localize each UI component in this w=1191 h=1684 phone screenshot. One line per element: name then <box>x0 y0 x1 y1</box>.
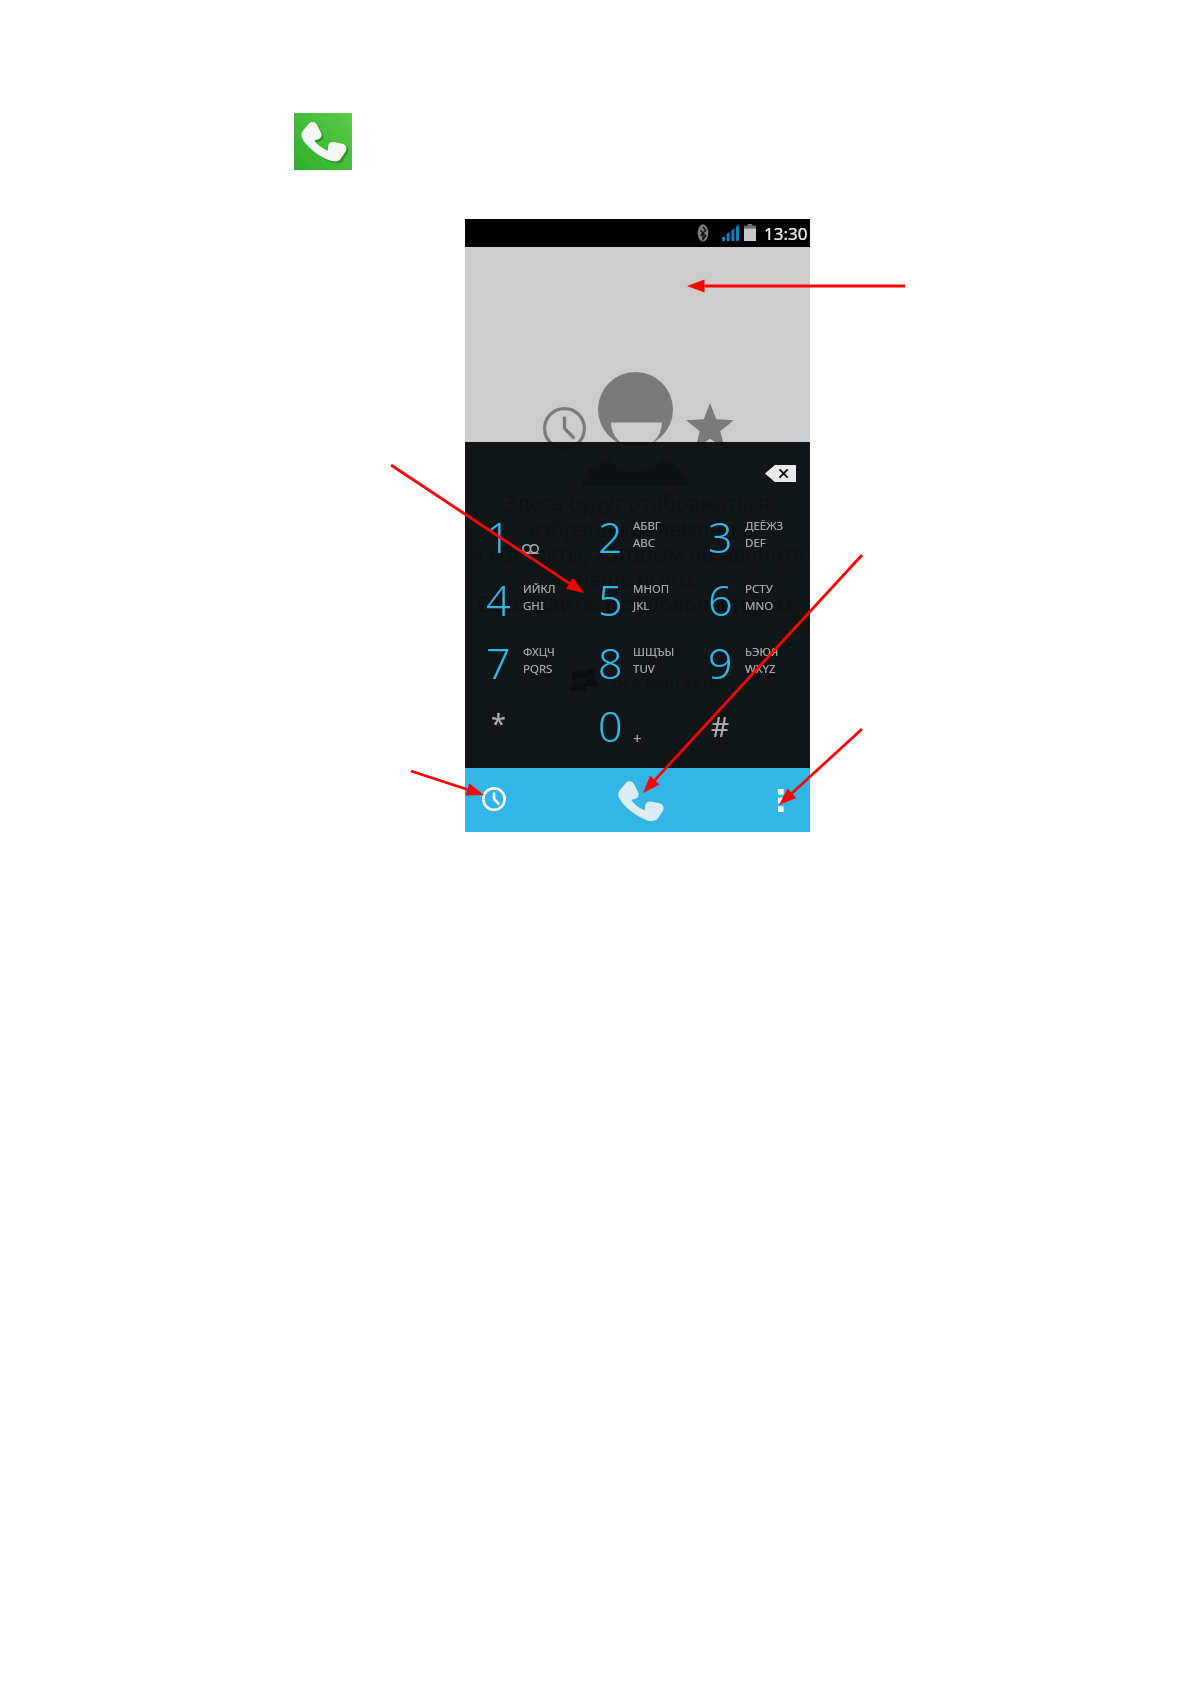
staticText: 4 <box>486 570 511 624</box>
staticText: ФХЦЧ PQRS <box>523 644 555 676</box>
button[interactable]: Dial 3 <box>695 506 810 568</box>
staticText: 7 <box>486 633 511 687</box>
staticText: РСТУ MNO <box>745 581 774 613</box>
staticText: ДЕЁЖЗ DEF <box>745 518 784 550</box>
staticText: 3 <box>708 507 733 561</box>
button[interactable]: Dial 9 <box>695 632 810 694</box>
button[interactable]: Dial * <box>465 695 580 757</box>
staticText: 5 <box>598 570 623 624</box>
staticText: # <box>711 707 730 745</box>
button[interactable]: Dial 0 <box>580 695 695 757</box>
staticText: 2 <box>598 507 623 561</box>
staticText: * <box>491 705 506 741</box>
button[interactable]: Dial 7 <box>465 632 580 694</box>
staticText: ИЙКЛ GHI <box>523 581 556 613</box>
button[interactable]: Dial 4 <box>465 569 580 631</box>
staticText: МНОП JKL <box>633 581 670 613</box>
staticText: 1 <box>486 507 511 561</box>
staticText: ШЩЪЫ TUV <box>633 644 675 676</box>
staticText: 6 <box>708 570 733 624</box>
button[interactable]: Favorites <box>685 404 735 452</box>
staticText: 9 <box>708 633 733 687</box>
staticText: 0 <box>598 696 623 750</box>
button[interactable]: Dial 6 <box>695 569 810 631</box>
staticText: 8 <box>598 633 623 687</box>
staticText: 13:30 <box>764 222 808 245</box>
button[interactable]: Dial 2 <box>580 506 695 568</box>
staticText: Здесь будут отображаться избранные элеме… <box>465 489 810 618</box>
button[interactable]: Recent <box>543 407 586 450</box>
button[interactable]: Backspace <box>765 465 796 482</box>
button[interactable]: Recent calls <box>482 787 506 811</box>
button[interactable]: More options <box>778 789 787 812</box>
button[interactable]: Dial # <box>695 695 810 757</box>
staticText: + <box>633 728 642 748</box>
button[interactable]: Contacts <box>598 372 673 447</box>
staticText: Все контакты <box>612 670 722 693</box>
button[interactable]: Dial 1 <box>465 506 580 568</box>
staticText: ЬЭЮЯ WXYZ <box>745 644 779 676</box>
button[interactable]: Call <box>616 778 660 822</box>
staticText: АБВГ ABC <box>633 518 661 550</box>
button[interactable]: Dial 8 <box>580 632 695 694</box>
button[interactable]: Phone app icon <box>294 113 352 170</box>
button[interactable]: Все контакты <box>565 664 715 694</box>
button[interactable]: Dial 5 <box>580 569 695 631</box>
